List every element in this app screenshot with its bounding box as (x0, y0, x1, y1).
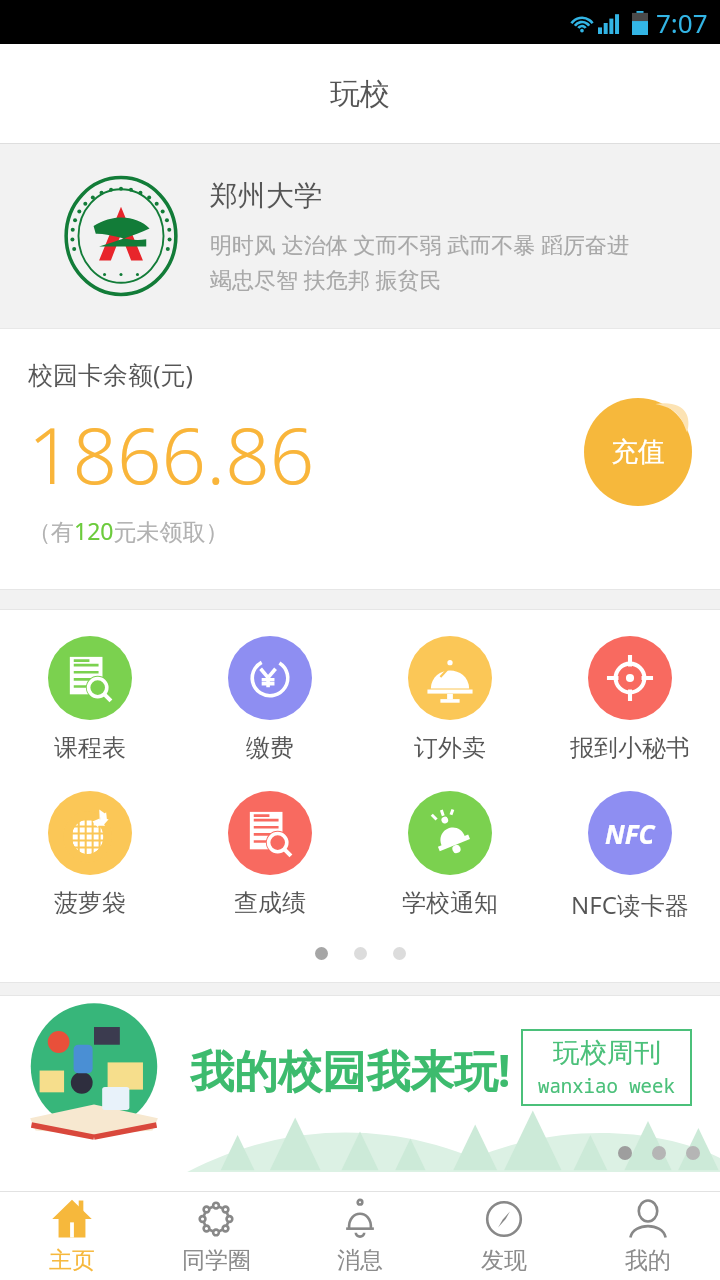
staticText: 主页 (49, 1246, 95, 1275)
staticText: 学校通知 (402, 888, 498, 918)
staticText: 消息 (337, 1246, 383, 1275)
button[interactable]: 发现 (432, 1192, 576, 1280)
staticText: （有120元未领取） (28, 515, 229, 546)
staticText: 校园卡余额(元) (28, 357, 194, 391)
button[interactable]: 报到小秘书 (540, 636, 720, 763)
button[interactable]: 我的校园我来玩! (0, 996, 720, 1172)
staticText: 7:07 (656, 5, 708, 40)
button[interactable]: 郑州大学 (0, 144, 720, 328)
button[interactable]: 同学圈 (144, 1192, 288, 1280)
staticText: 同学圈 (182, 1246, 251, 1275)
button[interactable]: 我的 (576, 1192, 720, 1280)
staticText: 发现 (481, 1246, 527, 1275)
button[interactable]: 查成绩 (180, 791, 360, 918)
staticText: NFC (605, 816, 655, 851)
staticText: 我的 (625, 1246, 671, 1275)
button[interactable]: 学校通知 (360, 791, 540, 918)
staticText: 郑州大学 (210, 178, 322, 213)
staticText: 明时风 达治体 文而不弱 武而不暴 蹈厉奋进 竭忠尽智 扶危邦 振贫民 (210, 229, 629, 294)
button[interactable]: 玩校周刊 (538, 1036, 675, 1099)
staticText: 我的校园我来玩! (190, 1040, 511, 1100)
staticText: 玩校 (330, 75, 390, 113)
button[interactable]: NFC (540, 791, 720, 921)
button[interactable]: 课程表 (0, 636, 180, 763)
staticText: wanxiao week (538, 1073, 675, 1099)
staticText: 缴费 (246, 733, 294, 763)
button[interactable]: 消息 (288, 1192, 432, 1280)
button[interactable]: 缴费 (180, 636, 360, 763)
staticText: 玩校周刊 (553, 1036, 661, 1070)
staticText: 菠萝袋 (54, 888, 126, 918)
staticText: 报到小秘书 (570, 733, 690, 763)
staticText: 查成绩 (234, 888, 306, 918)
button[interactable]: 主页 (0, 1192, 144, 1280)
button[interactable]: 充值 (584, 398, 692, 506)
button[interactable]: 菠萝袋 (0, 791, 180, 918)
staticText: 充值 (611, 435, 665, 469)
button[interactable]: 订外卖 (360, 636, 540, 763)
staticText: 订外卖 (414, 733, 486, 763)
staticText: NFC读卡器 (571, 888, 689, 921)
staticText: 1866.86 (28, 401, 315, 507)
staticText: 课程表 (54, 733, 126, 763)
